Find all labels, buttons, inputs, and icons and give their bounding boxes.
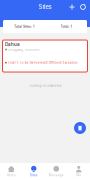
staticText: Sites bbox=[38, 4, 51, 10]
button[interactable]: Reports bbox=[74, 122, 86, 134]
button[interactable]: Add site bbox=[68, 3, 76, 11]
staticText: Dahua bbox=[5, 42, 20, 47]
button[interactable]: Home bbox=[0, 163, 22, 180]
staticText: Longgang, Shenzhen bbox=[8, 48, 40, 51]
staticText: Message bbox=[49, 173, 64, 177]
staticText: Sites bbox=[30, 173, 38, 177]
staticText: Home bbox=[7, 173, 16, 177]
staticText: Total: 1 bbox=[60, 24, 71, 29]
button[interactable]: Me bbox=[67, 163, 90, 180]
staticText: Loading is completed bbox=[28, 84, 61, 87]
button[interactable]: Sites bbox=[22, 163, 45, 180]
button[interactable]: Refresh bbox=[79, 3, 87, 11]
staticText: Total Sites: 1 bbox=[14, 24, 34, 29]
button[interactable]: Dahua bbox=[2, 40, 87, 72]
button[interactable]: Message bbox=[45, 163, 67, 180]
staticText: Me bbox=[76, 173, 81, 177]
staticText: Total 1: To be Delivered/0 Offline/0 Exc… bbox=[8, 61, 78, 64]
